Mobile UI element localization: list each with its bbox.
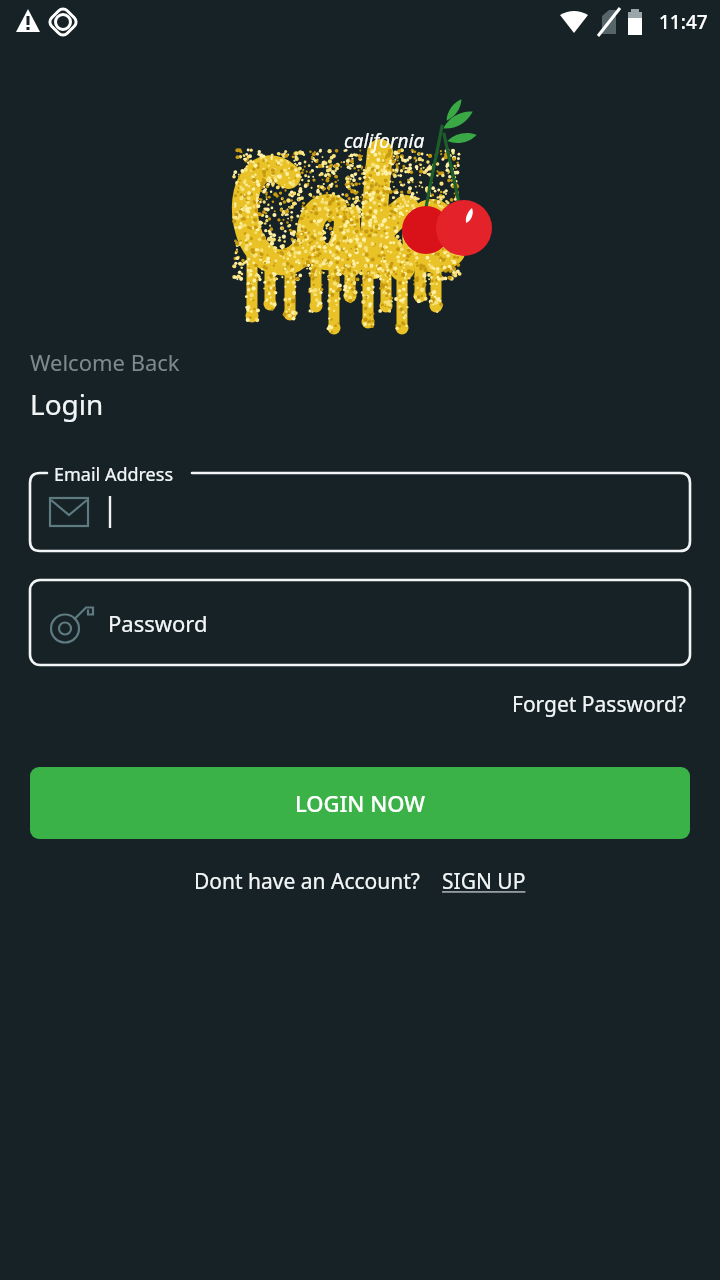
staticText: Password — [108, 608, 208, 638]
staticText: Dont have an Account? — [194, 867, 420, 896]
staticText: Login — [30, 385, 104, 423]
button[interactable]: LOGIN NOW — [30, 767, 690, 839]
button[interactable]: Password — [30, 580, 690, 665]
staticText: Email Address — [54, 462, 174, 487]
staticText: 11:47 — [659, 9, 708, 35]
staticText: california — [344, 128, 425, 154]
staticText: Forget Password? — [512, 690, 686, 719]
staticText: Welcome Back — [30, 347, 180, 377]
button[interactable]: Forget Password? — [508, 686, 690, 723]
button[interactable]: Email Address — [30, 473, 690, 551]
staticText: SIGN UP — [442, 867, 526, 896]
staticText: LOGIN NOW — [295, 788, 425, 818]
button[interactable]: SIGN UP — [442, 867, 526, 896]
